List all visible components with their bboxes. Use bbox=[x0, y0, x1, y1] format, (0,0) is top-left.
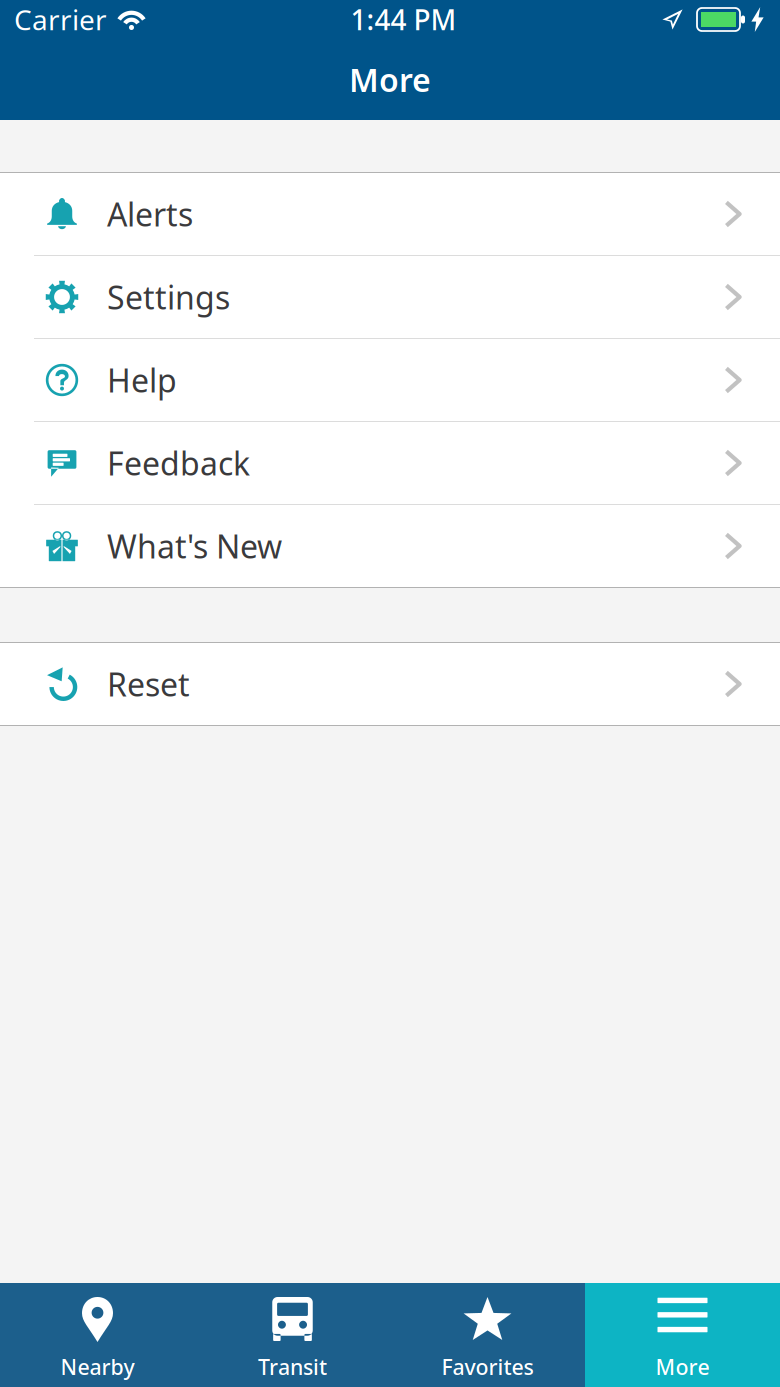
staticText: 1:44 PM bbox=[350, 1, 456, 38]
button[interactable]: More bbox=[585, 1283, 780, 1387]
button[interactable]: Help bbox=[0, 339, 780, 422]
staticText: Feedback bbox=[107, 442, 250, 484]
staticText: More bbox=[349, 58, 431, 101]
staticText: Settings bbox=[107, 276, 230, 318]
button[interactable]: Feedback bbox=[0, 422, 780, 505]
staticText: Carrier bbox=[14, 1, 107, 38]
button[interactable]: What's New bbox=[0, 505, 780, 588]
staticText: What's New bbox=[107, 525, 282, 567]
staticText: More bbox=[655, 1353, 709, 1381]
staticText: Nearby bbox=[60, 1353, 134, 1381]
staticText: Reset bbox=[107, 663, 190, 705]
staticText: Favorites bbox=[441, 1353, 533, 1381]
button[interactable]: Transit bbox=[195, 1283, 390, 1387]
staticText: Transit bbox=[258, 1353, 327, 1381]
button[interactable]: Nearby bbox=[0, 1283, 195, 1387]
staticText: Alerts bbox=[107, 193, 193, 235]
button[interactable]: Reset bbox=[0, 643, 780, 726]
button[interactable]: Settings bbox=[0, 256, 780, 339]
button[interactable]: Favorites bbox=[390, 1283, 585, 1387]
button[interactable]: Alerts bbox=[0, 173, 780, 256]
staticText: Help bbox=[107, 359, 177, 401]
